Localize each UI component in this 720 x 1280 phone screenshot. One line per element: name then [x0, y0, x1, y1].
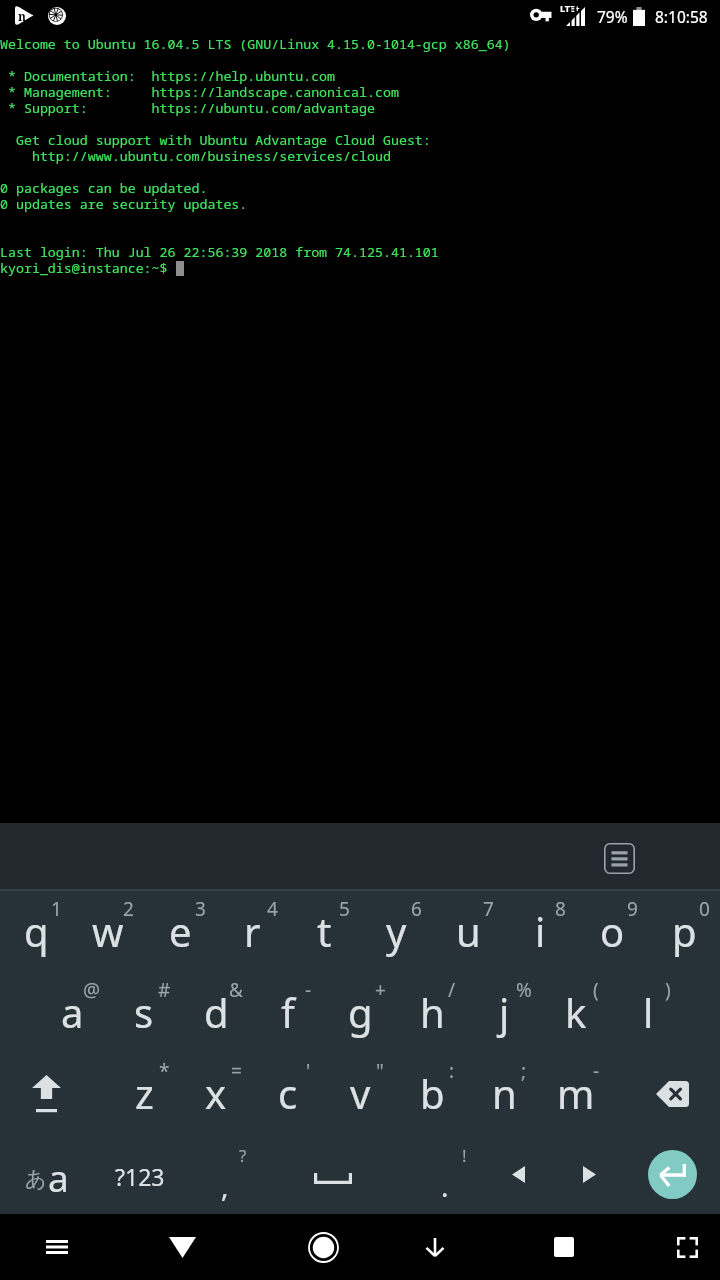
button[interactable]: Shift: [0, 1053, 108, 1134]
button[interactable]: Comma: [188, 1134, 280, 1214]
button[interactable]: Hide keyboard: [152, 1214, 212, 1280]
button[interactable]: Symbols: [94, 1134, 188, 1214]
staticText: ?: [239, 1144, 247, 1167]
staticText: g: [348, 985, 373, 1039]
staticText: j: [499, 985, 510, 1039]
staticText: :: [449, 1058, 455, 1084]
staticText: ,: [221, 1167, 229, 1205]
staticText: ': [306, 1058, 311, 1084]
button[interactable]: -: [252, 972, 324, 1053]
button[interactable]: #: [108, 972, 180, 1053]
staticText: Last login: Thu Jul 26 22:56:39 2018 fro…: [0, 243, 439, 261]
staticText: t: [317, 904, 332, 958]
staticText: ): [665, 977, 671, 1003]
button[interactable]: Home: [293, 1214, 353, 1280]
staticText: ?123: [115, 1161, 165, 1192]
button[interactable]: 0: [648, 891, 720, 972]
button[interactable]: Backspace: [612, 1053, 720, 1134]
staticText: f: [281, 985, 295, 1039]
staticText: b: [420, 1066, 445, 1120]
staticText: 5: [339, 896, 350, 922]
button[interactable]: Keyboard options: [604, 843, 635, 874]
staticText: 2: [123, 896, 134, 922]
button[interactable]: 1: [0, 891, 72, 972]
staticText: 6: [411, 896, 422, 922]
staticText: 3: [195, 896, 206, 922]
staticText: !: [462, 1144, 467, 1167]
staticText: http://www.ubuntu.com/business/services/…: [0, 147, 391, 165]
staticText: x: [205, 1066, 227, 1120]
staticText: Get cloud support with Ubuntu Advantage …: [0, 131, 431, 149]
staticText: i: [535, 904, 546, 958]
staticText: あ: [25, 1166, 47, 1192]
button[interactable]: @: [36, 972, 108, 1053]
button[interactable]: 8: [504, 891, 576, 972]
button[interactable]: 7: [432, 891, 504, 972]
staticText: LTE+: [560, 2, 580, 14]
button[interactable]: Enter: [625, 1134, 720, 1214]
staticText: +: [375, 977, 386, 1003]
staticText: 79%: [597, 6, 628, 27]
button[interactable]: 6: [360, 891, 432, 972]
button[interactable]: Change language: [0, 1134, 94, 1214]
button[interactable]: (: [540, 972, 612, 1053]
staticText: kyori_dis@instance:~$: [0, 259, 168, 277]
button[interactable]: Menu: [27, 1214, 87, 1280]
button[interactable]: +: [324, 972, 396, 1053]
staticText: /: [448, 977, 456, 1003]
button[interactable]: ': [252, 1053, 324, 1134]
button[interactable]: 2: [72, 891, 144, 972]
staticText: w: [92, 904, 124, 958]
button[interactable]: Scroll down: [405, 1214, 465, 1280]
staticText: * Management: https://landscape.canonica…: [0, 83, 399, 101]
staticText: s: [134, 985, 154, 1039]
staticText: l: [643, 985, 654, 1039]
button[interactable]: Cursor right: [553, 1134, 625, 1214]
button[interactable]: ): [612, 972, 684, 1053]
staticText: n: [492, 1066, 517, 1120]
button[interactable]: 9: [576, 891, 648, 972]
button[interactable]: *: [108, 1053, 180, 1134]
staticText: o: [600, 904, 625, 958]
button[interactable]: &: [180, 972, 252, 1053]
staticText: y: [386, 904, 407, 958]
staticText: ": [376, 1058, 384, 1084]
staticText: .: [441, 1167, 449, 1205]
staticText: =: [231, 1058, 242, 1084]
button[interactable]: Recents: [534, 1214, 594, 1280]
staticText: @: [83, 977, 101, 1003]
staticText: 7: [483, 896, 494, 922]
button[interactable]: 4: [216, 891, 288, 972]
button[interactable]: 3: [144, 891, 216, 972]
button[interactable]: ;: [468, 1053, 540, 1134]
button[interactable]: =: [180, 1053, 252, 1134]
button[interactable]: :: [396, 1053, 468, 1134]
staticText: 0 packages can be updated.: [0, 179, 208, 197]
staticText: * Support: https://ubuntu.com/advantage: [0, 99, 375, 117]
button[interactable]: Space: [280, 1134, 390, 1214]
staticText: c: [278, 1066, 298, 1120]
staticText: r: [244, 904, 261, 958]
staticText: * Documentation: https://help.ubuntu.com: [0, 67, 336, 85]
staticText: %: [516, 977, 532, 1003]
button[interactable]: 5: [288, 891, 360, 972]
button[interactable]: Fullscreen: [657, 1214, 717, 1280]
staticText: p: [672, 904, 697, 958]
staticText: *: [159, 1058, 170, 1084]
button[interactable]: /: [396, 972, 468, 1053]
button[interactable]: Period: [390, 1134, 484, 1214]
staticText: m: [557, 1066, 595, 1120]
button[interactable]: Terminal output: [0, 35, 720, 823]
staticText: Welcome to Ubuntu 16.04.5 LTS (GNU/Linux…: [0, 35, 511, 53]
button[interactable]: ": [324, 1053, 396, 1134]
staticText: h: [420, 985, 445, 1039]
staticText: 8: [555, 896, 566, 922]
staticText: a: [61, 985, 84, 1039]
button[interactable]: -: [540, 1053, 612, 1134]
staticText: e: [169, 904, 192, 958]
button[interactable]: Cursor left: [484, 1134, 553, 1214]
staticText: (: [593, 977, 599, 1003]
button[interactable]: %: [468, 972, 540, 1053]
staticText: a: [48, 1152, 69, 1202]
staticText: z: [135, 1066, 154, 1120]
